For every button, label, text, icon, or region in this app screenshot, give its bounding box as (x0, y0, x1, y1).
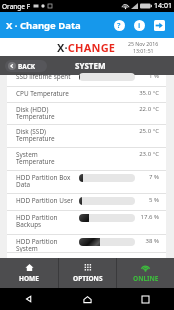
button[interactable]: OPTIONS (59, 258, 116, 288)
staticText: 14:01 (154, 1, 172, 11)
button[interactable]: Home (78, 290, 96, 308)
staticText: HDD Partition Backups (16, 213, 79, 229)
staticText: Orange F (2, 2, 31, 11)
staticText: 23.0 °C (139, 150, 159, 158)
button[interactable]: SSD lifetime spent (7, 70, 166, 86)
button[interactable]: Recents (136, 290, 154, 308)
button[interactable]: Log out (149, 15, 169, 35)
button[interactable]: Help (109, 15, 129, 35)
button[interactable]: HOME (0, 258, 58, 288)
button[interactable]: CPU Temperature (7, 87, 166, 102)
staticText: HDD Partition System (16, 237, 79, 252)
staticText: SSD lifetime spent (16, 72, 79, 81)
staticText: 17.6 % (140, 213, 159, 221)
button[interactable]: Disk (SSD) Temperature (7, 125, 166, 147)
staticText: HOME (19, 274, 39, 283)
staticText: 13:01:51 (133, 47, 154, 54)
staticText: Disk (SSD) Temperature (16, 127, 139, 143)
staticText: SYSTEM (75, 60, 106, 71)
staticText: 25.0 °C (139, 127, 159, 135)
button[interactable]: Info (129, 15, 149, 35)
button[interactable]: BACK (5, 60, 47, 72)
button[interactable]: HDD Partition User (7, 194, 166, 210)
staticText: X · Change Data (6, 19, 81, 32)
staticText: 25 Nov 2016 (128, 40, 159, 47)
staticText: System Temperature (16, 150, 139, 166)
staticText: ? (117, 20, 121, 30)
staticText: HDD Partition User (16, 196, 79, 205)
staticText: OPTIONS (73, 274, 103, 283)
button[interactable]: Disk (HDD) Temperature (7, 103, 166, 124)
staticText: 7 % (149, 173, 159, 181)
staticText: Disk (HDD) Temperature (16, 105, 139, 121)
staticText: 22.0 °C (139, 105, 159, 113)
staticText: 38 % (145, 237, 159, 245)
staticText: CPU Temperature (16, 89, 139, 98)
button[interactable]: HDD Partition Box Data (7, 171, 166, 193)
staticText: ONLINE (133, 274, 159, 283)
staticText: X·CHANGE (57, 40, 116, 55)
button[interactable]: HDD Partition Backups (7, 211, 166, 234)
button[interactable]: ONLINE (117, 258, 174, 288)
button[interactable]: System Temperature (7, 148, 166, 170)
staticText: 1 % (149, 72, 159, 80)
staticText: i (138, 20, 141, 30)
button[interactable]: Back (20, 290, 38, 308)
button[interactable]: HDD Partition System (7, 235, 166, 252)
staticText: HDD Partition Box Data (16, 173, 79, 189)
staticText: 35.0 °C (139, 89, 159, 97)
staticText: 5 % (149, 196, 159, 204)
staticText: BACK (18, 62, 36, 71)
